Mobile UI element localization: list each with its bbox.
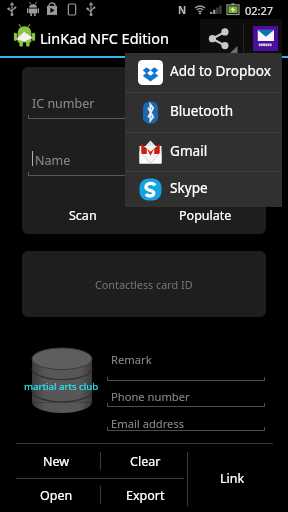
staticText: Populate bbox=[179, 207, 232, 224]
staticText: Bluetooth bbox=[170, 101, 234, 120]
button[interactable]: Gmail bbox=[125, 133, 282, 171]
button[interactable]: Populate bbox=[144, 203, 266, 227]
staticText: Add to Dropbox bbox=[170, 61, 271, 80]
staticText: Clear bbox=[130, 453, 161, 470]
staticText: Open bbox=[40, 487, 73, 504]
button[interactable]: Skype bbox=[125, 172, 282, 207]
staticText: Name bbox=[35, 152, 71, 169]
button[interactable]: Add to Dropbox bbox=[125, 53, 282, 92]
staticText: Gmail bbox=[170, 141, 208, 160]
staticText: New bbox=[43, 453, 70, 470]
staticText: martial arts club bbox=[24, 380, 99, 393]
button[interactable]: Export bbox=[101, 478, 189, 512]
button[interactable]: Bluetooth bbox=[125, 93, 282, 132]
button[interactable]: New bbox=[16, 444, 97, 478]
staticText: 02:27 bbox=[245, 3, 274, 18]
staticText: Contactless card ID bbox=[95, 277, 193, 292]
staticText: Phone number bbox=[111, 389, 190, 404]
staticText: LinKad NFC Edition bbox=[40, 28, 170, 48]
button[interactable]: Share bbox=[201, 20, 239, 56]
staticText: Scan bbox=[69, 207, 97, 224]
staticText: Link bbox=[220, 470, 245, 487]
staticText: N bbox=[178, 3, 187, 17]
button[interactable]: martial arts club bbox=[24, 379, 99, 394]
staticText: Email address bbox=[111, 416, 185, 431]
button[interactable]: Yahoo Mail bbox=[253, 26, 278, 51]
staticText: Skype bbox=[170, 178, 208, 197]
staticText: Remark bbox=[111, 352, 152, 367]
button[interactable]: Link bbox=[188, 444, 277, 512]
button[interactable]: Contactless card ID bbox=[22, 251, 266, 317]
staticText: Export bbox=[126, 487, 165, 504]
button[interactable]: Open bbox=[16, 478, 97, 512]
button[interactable]: Clear bbox=[101, 444, 189, 478]
staticText: IC number bbox=[32, 95, 95, 112]
button[interactable]: Scan bbox=[22, 203, 144, 227]
